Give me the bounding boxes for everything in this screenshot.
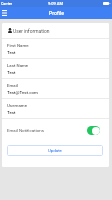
staticText: Test	[7, 70, 16, 75]
staticText: 9:09 AM	[48, 1, 64, 6]
staticText: Last Name	[7, 63, 29, 68]
staticText: Test@Test.com	[7, 90, 38, 95]
staticText: Update	[48, 148, 62, 153]
staticText: Profile	[49, 10, 64, 16]
staticText: Email	[7, 83, 18, 88]
button[interactable]: Email Notifications	[7, 119, 100, 141]
staticText: Test	[7, 110, 16, 115]
staticText: Test	[7, 50, 16, 55]
staticText: Username	[7, 103, 28, 108]
staticText: User information	[13, 28, 50, 34]
staticText: First Name	[7, 43, 29, 48]
staticText: Carrier	[1, 2, 12, 6]
button[interactable]: Update	[7, 145, 103, 156]
staticText: Email Notifications	[7, 128, 44, 133]
button[interactable]: Menu	[0, 7, 9, 19]
